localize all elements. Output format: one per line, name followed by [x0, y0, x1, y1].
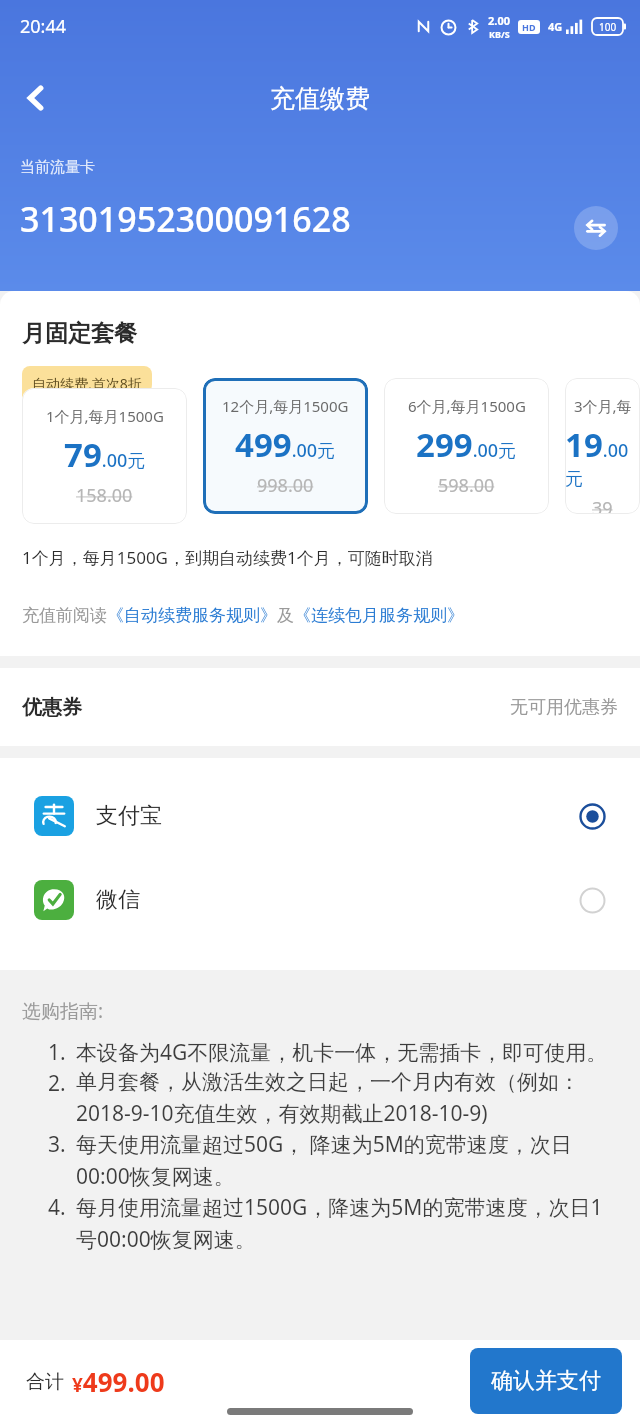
button[interactable]: 3个月,每: [565, 378, 640, 514]
staticText: 100: [599, 20, 617, 34]
staticText: 4G: [548, 19, 563, 34]
button[interactable]: 6个月,每月1500G: [384, 378, 549, 514]
staticText: 598.00: [438, 473, 495, 498]
staticText: 每月使用流量超过1500G，降速为5M的宽带速度，次日1号00:00恢复网速。: [76, 1193, 618, 1254]
staticText: 19.00元: [565, 422, 640, 490]
staticText: 合计: [26, 1370, 64, 1394]
staticText: 月固定套餐: [22, 319, 137, 348]
staticText: 499.00元: [235, 422, 336, 467]
button[interactable]: 充值前阅读《自动续费服务规则》及《连续包月服务规则》: [22, 605, 464, 626]
staticText: 39: [592, 496, 613, 514]
staticText: 4.: [48, 1193, 76, 1222]
staticText: 79.00元: [64, 432, 146, 477]
staticText: 充值缴费: [270, 83, 370, 114]
staticText: 2.00: [488, 13, 510, 28]
staticText: 自动续费,首次8折: [32, 374, 142, 393]
staticText: 31301952300091628: [20, 196, 351, 242]
staticText: 998.00: [257, 473, 314, 498]
staticText: 1个月，每月1500G，到期自动续费1个月，可随时取消: [22, 546, 433, 569]
staticText: 选购指南:: [22, 998, 104, 1024]
staticText: 每天使用流量超过50G， 降速为5M的宽带速度，次日00:00恢复网速。: [76, 1130, 618, 1191]
button[interactable]: 优惠券: [0, 668, 640, 746]
staticText: 299.00元: [416, 422, 517, 467]
staticText: 确认并支付: [491, 1367, 601, 1395]
staticText: 微信: [96, 886, 140, 914]
staticText: 3个月,每: [574, 396, 632, 416]
staticText: KB/S: [489, 28, 510, 40]
staticText: 单月套餐，从激活生效之日起，一个月内有效（例如：2018-9-10充值生效，有效…: [76, 1069, 618, 1128]
staticText: 20:44: [20, 14, 67, 39]
staticText: 本设备为4G不限流量，机卡一体，无需插卡，即可使用。: [76, 1038, 608, 1067]
button[interactable]: Switch card: [574, 206, 618, 250]
staticText: HD: [522, 21, 536, 33]
button[interactable]: 12个月,每月1500G: [203, 378, 368, 514]
staticText: ¥499.00: [72, 1364, 165, 1399]
staticText: 当前流量卡: [20, 158, 95, 177]
staticText: 支付宝: [96, 802, 162, 830]
button[interactable]: 1个月,每月1500G: [22, 388, 187, 524]
button[interactable]: 微信: [0, 858, 640, 942]
staticText: 158.00: [76, 483, 133, 508]
staticText: 3.: [48, 1130, 76, 1159]
button[interactable]: 支付宝: [0, 774, 640, 858]
staticText: 优惠券: [22, 695, 82, 720]
staticText: 1个月,每月1500G: [46, 406, 164, 426]
staticText: 无可用优惠券: [510, 696, 618, 719]
staticText: 2.: [48, 1069, 76, 1098]
staticText: 6个月,每月1500G: [408, 396, 526, 416]
staticText: 12个月,每月1500G: [222, 396, 349, 416]
button[interactable]: 确认并支付: [470, 1348, 622, 1414]
staticText: 1.: [48, 1038, 76, 1067]
button[interactable]: Back: [8, 70, 64, 126]
